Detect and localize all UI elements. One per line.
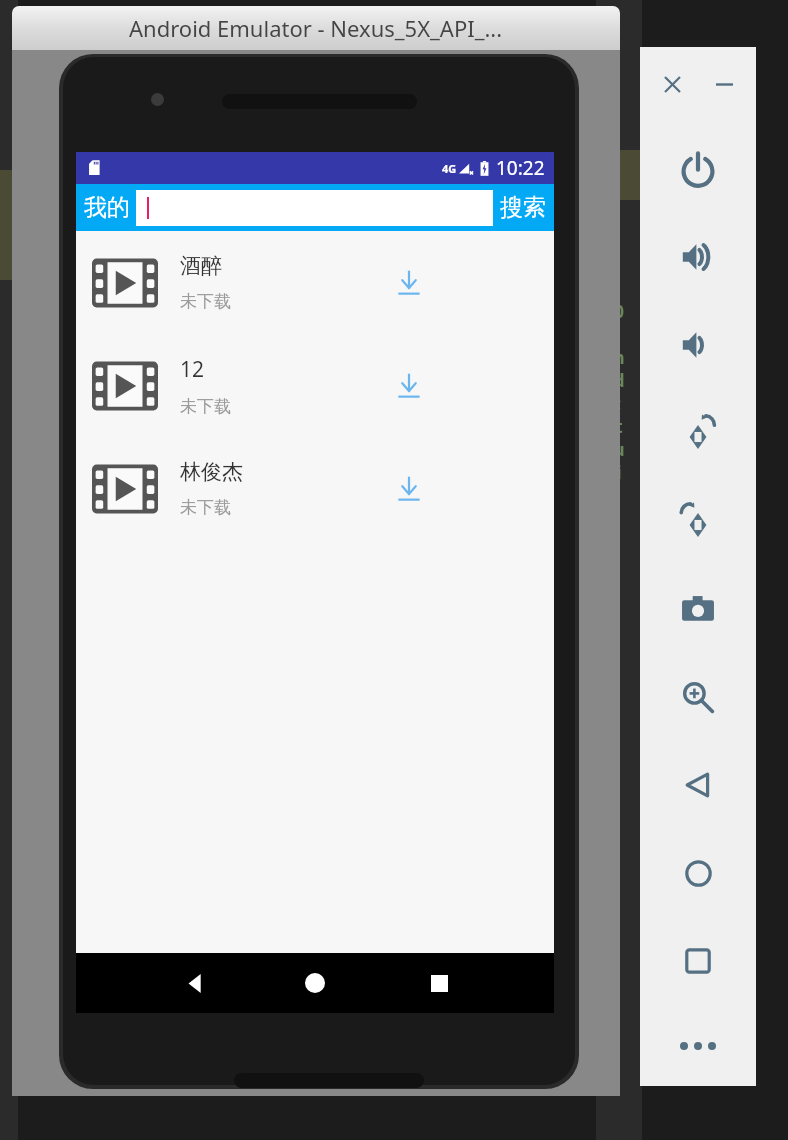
button[interactable]: Download 林俊杰	[382, 462, 436, 516]
staticText: 未下载	[180, 396, 231, 417]
button[interactable]: Home	[285, 953, 345, 1013]
staticText: h	[596, 346, 642, 369]
staticText: 0	[596, 300, 642, 323]
staticText: u	[596, 438, 642, 461]
button[interactable]: Screenshot	[640, 565, 756, 653]
button[interactable]: Download 酒醉	[382, 256, 436, 310]
staticText: 10:22	[496, 155, 545, 181]
staticText: 未下载	[180, 291, 231, 312]
staticText: Android Emulator - Nexus_5X_API_...	[129, 13, 503, 43]
button[interactable]: 林俊杰	[76, 437, 554, 540]
button[interactable]: Back	[640, 741, 756, 829]
staticText: 12	[180, 355, 205, 384]
staticText: 酒醉	[180, 253, 222, 279]
button[interactable]	[136, 190, 493, 226]
button[interactable]: Recents	[409, 953, 469, 1013]
button[interactable]: Zoom	[640, 653, 756, 741]
button[interactable]: Close	[657, 69, 687, 99]
staticText: t	[596, 415, 642, 438]
staticText	[596, 323, 642, 346]
staticText: 林俊杰	[180, 459, 243, 485]
staticText: 4G	[442, 161, 457, 176]
button[interactable]: 12	[76, 334, 554, 437]
button[interactable]: Rotate right	[640, 477, 756, 565]
button[interactable]: Rotate left	[640, 389, 756, 477]
staticText: 未下载	[180, 497, 231, 518]
button[interactable]: Download 12	[382, 359, 436, 413]
button[interactable]: 我的	[76, 193, 136, 222]
button[interactable]: Volume down	[640, 301, 756, 389]
staticText: 搜索	[500, 193, 546, 222]
staticText: ;	[596, 392, 642, 415]
button[interactable]: Back	[166, 953, 226, 1013]
button[interactable]: Minimize	[709, 69, 739, 99]
button[interactable]: 搜索	[493, 193, 554, 222]
button[interactable]: Overview	[640, 917, 756, 1005]
button[interactable]: Volume up	[640, 213, 756, 301]
button[interactable]: Power	[640, 125, 756, 213]
staticText: d	[596, 369, 642, 392]
button[interactable]: More	[640, 1005, 756, 1086]
staticText: 我的	[84, 193, 130, 222]
staticText: i	[596, 461, 642, 484]
button[interactable]: 酒醉	[76, 231, 554, 334]
button[interactable]: Home	[640, 829, 756, 917]
